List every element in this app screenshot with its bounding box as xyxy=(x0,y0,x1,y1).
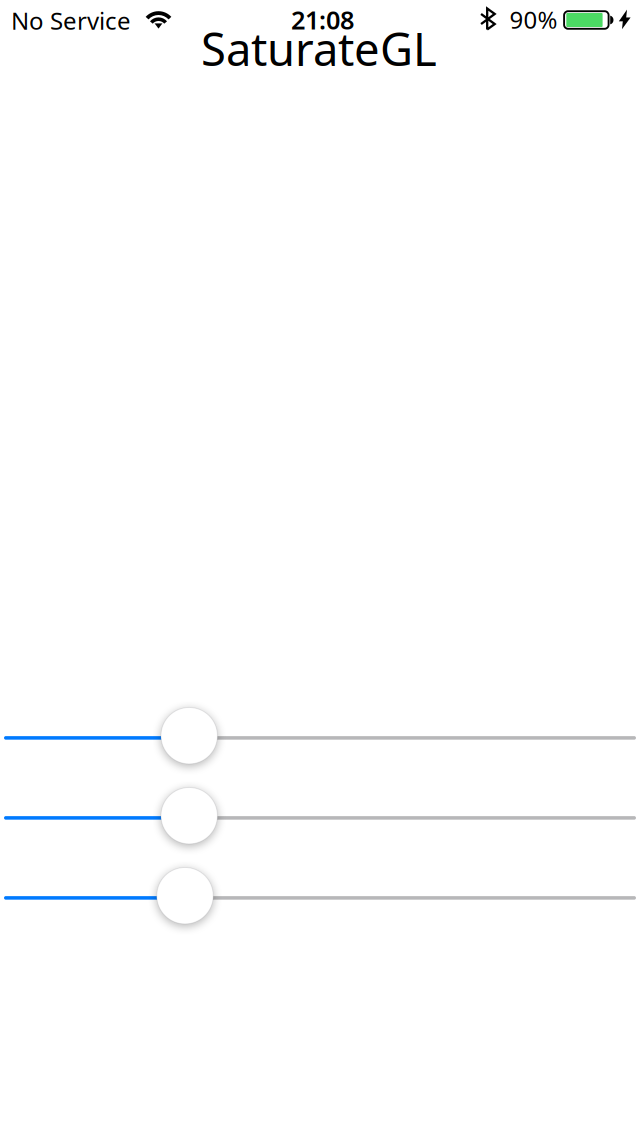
button[interactable]: Blue saturation xyxy=(0,0,640,80)
staticText: 90% xyxy=(509,4,557,35)
staticText: 21:08 xyxy=(291,3,354,36)
staticText: SaturateGL xyxy=(201,18,437,79)
button[interactable]: Green saturation xyxy=(0,0,640,80)
staticText: No Service xyxy=(11,5,131,36)
button[interactable]: Red saturation xyxy=(0,0,640,80)
